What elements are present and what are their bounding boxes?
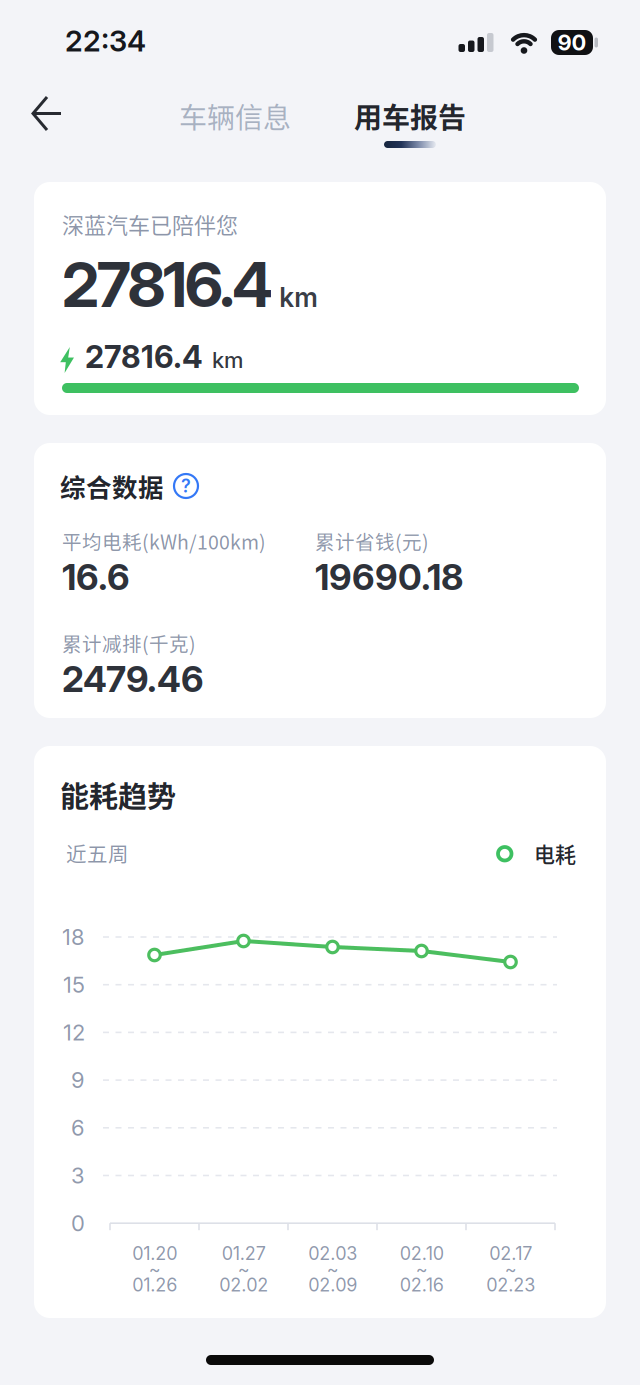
staticText: 平均电耗(kWh/100km) — [62, 527, 266, 555]
staticText: ? — [181, 475, 191, 497]
staticText: 27816.4 — [85, 338, 203, 375]
staticText: 累计减排(千克) — [62, 629, 196, 657]
staticText: 15 — [63, 971, 85, 998]
staticText: km — [279, 281, 318, 313]
staticText: 90 — [557, 29, 586, 56]
staticText: 02.17 ~ 02.23 — [486, 1246, 535, 1293]
staticText: 22:34 — [65, 23, 146, 59]
staticText: 19690.18 — [315, 555, 463, 599]
staticText: 9 — [71, 1067, 85, 1093]
staticText: 02.10 ~ 02.16 — [399, 1246, 443, 1293]
staticText: km — [212, 347, 243, 373]
button[interactable]: 车辆信息 — [160, 94, 310, 138]
staticText: 电耗 — [534, 838, 576, 868]
staticText: 用车报告 — [354, 96, 466, 136]
staticText: 27816.4 — [62, 247, 273, 322]
staticText: 16.6 — [62, 555, 130, 599]
staticText: 累计省钱(元) — [315, 527, 429, 555]
button[interactable]: 用车报告 — [335, 94, 485, 138]
staticText: 18 — [62, 924, 85, 950]
staticText: 深蓝汽车已陪伴您 — [62, 208, 238, 240]
staticText: 6 — [71, 1114, 85, 1141]
staticText: 能耗趋势 — [60, 774, 176, 816]
staticText: 02.03 ~ 02.09 — [308, 1246, 357, 1293]
staticText: 01.20 ~ 01.26 — [132, 1246, 177, 1293]
staticText: 综合数据 — [60, 467, 164, 504]
staticText: 01.27 ~ 02.02 — [219, 1246, 268, 1293]
button[interactable]: Back — [19, 85, 77, 143]
staticText: 0 — [71, 1210, 85, 1236]
staticText: 车辆信息 — [179, 96, 291, 136]
button[interactable]: 帮助 — [173, 473, 199, 499]
staticText: 3 — [71, 1162, 85, 1189]
staticText: 2479.46 — [62, 657, 204, 701]
staticText: 12 — [63, 1019, 85, 1046]
staticText: 近五周 — [66, 838, 129, 868]
